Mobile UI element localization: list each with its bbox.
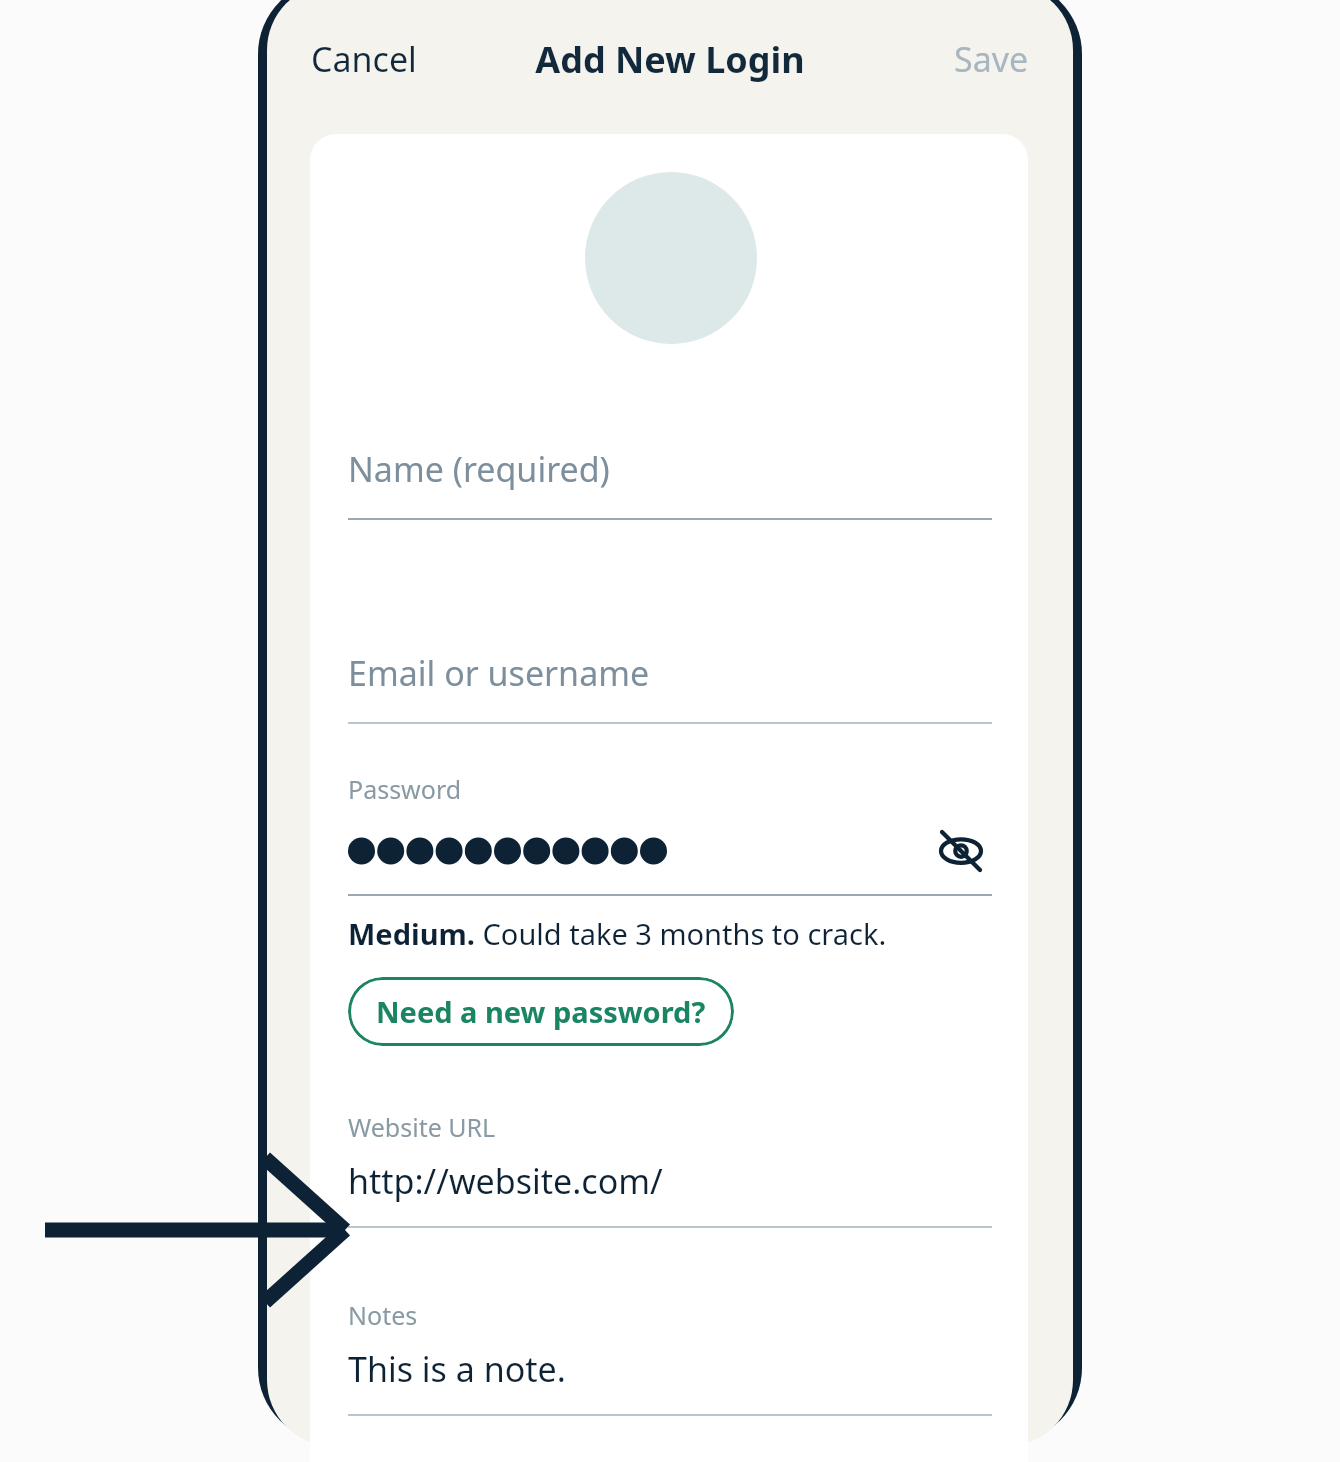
staticText: Need a new password? [376,992,706,1031]
staticText: This is a note. [348,1346,566,1392]
button[interactable]: Cancel [309,30,419,88]
staticText: Password [348,772,462,806]
staticText: Notes [348,1298,418,1332]
staticText: Name (required) [348,446,610,492]
button[interactable]: Need a new password? [348,977,734,1046]
staticText: Email or username [348,650,650,696]
staticText: Could take 3 months to crack. [475,914,887,953]
button[interactable]: Email or username [348,628,992,724]
staticText: Add New Login [535,35,805,84]
staticText: http://website.com/ [348,1158,663,1204]
button[interactable]: Password [348,772,992,896]
button[interactable]: Change icon [585,172,757,344]
button[interactable]: Name (required) [348,424,992,520]
button[interactable]: Website URL [348,1110,992,1228]
button[interactable]: Notes [348,1298,992,1416]
button[interactable]: Save [952,30,1031,88]
staticText: Website URL [348,1110,496,1144]
staticText: Medium. [348,914,475,953]
button[interactable]: Show password [930,822,992,880]
